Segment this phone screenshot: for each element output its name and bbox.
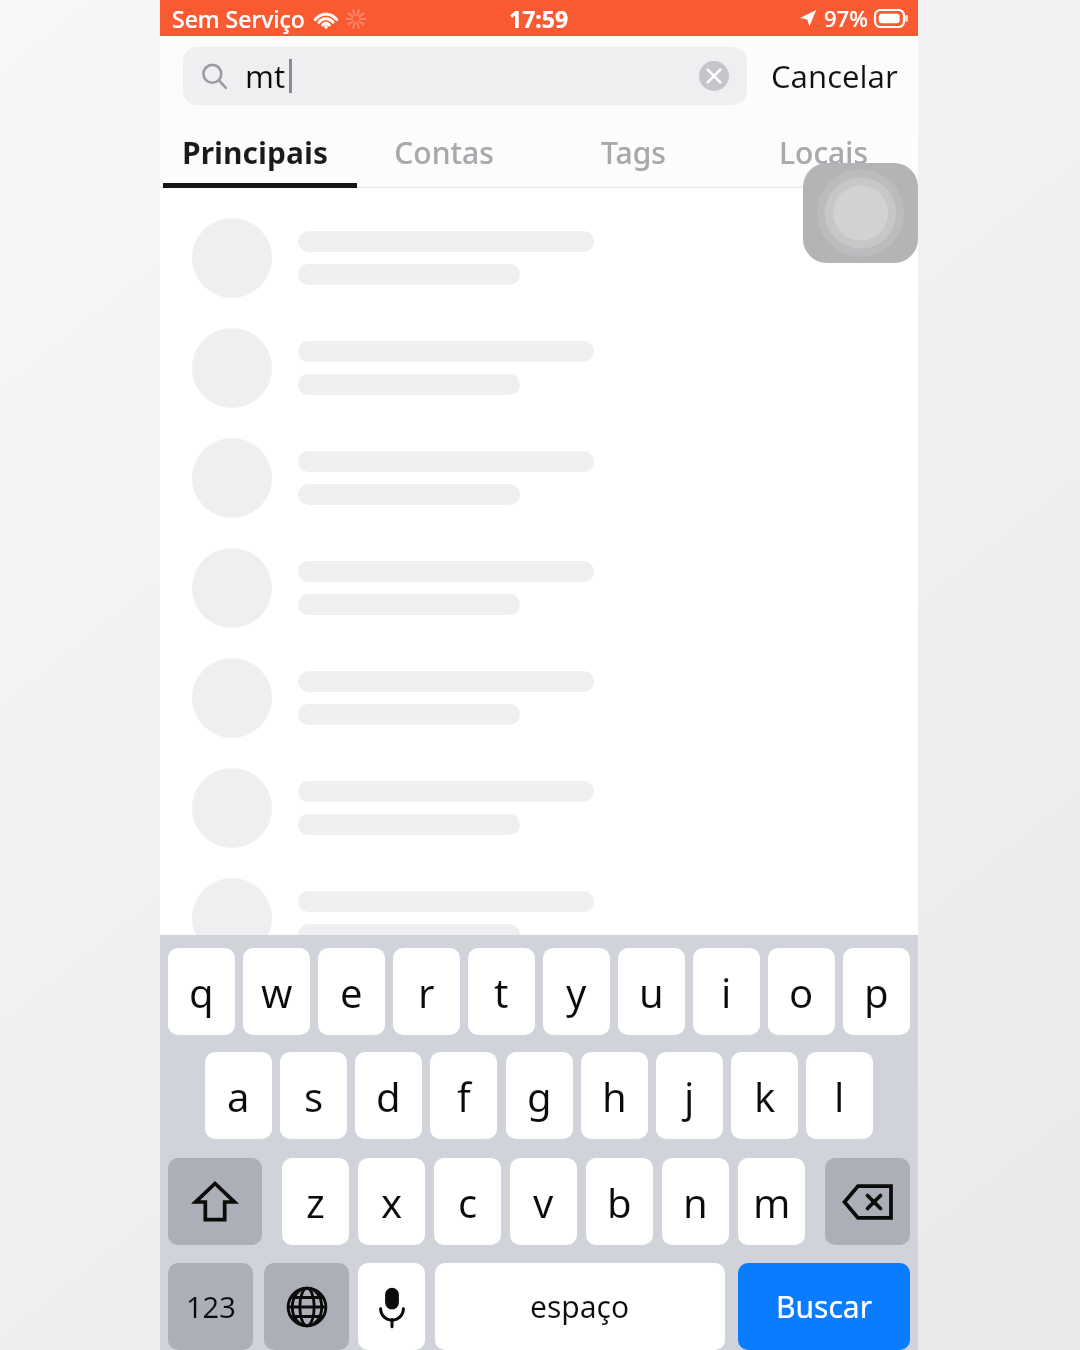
- button[interactable]: t: [468, 948, 535, 1035]
- button[interactable]: c: [434, 1158, 501, 1245]
- staticText: o: [789, 965, 814, 1019]
- staticText: i: [721, 965, 732, 1019]
- button[interactable]: l: [806, 1052, 873, 1139]
- button[interactable]: u: [618, 948, 685, 1035]
- staticText: Locais: [779, 132, 868, 173]
- button[interactable]: [160, 203, 918, 313]
- button[interactable]: [160, 423, 918, 533]
- staticText: f: [457, 1069, 471, 1123]
- button[interactable]: [160, 973, 918, 1083]
- button[interactable]: [160, 533, 918, 643]
- button[interactable]: z: [282, 1158, 349, 1245]
- staticText: k: [754, 1069, 776, 1123]
- button[interactable]: y: [543, 948, 610, 1035]
- staticText: t: [494, 965, 509, 1019]
- button[interactable]: Limpar busca: [699, 61, 729, 91]
- button[interactable]: Buscar: [738, 1263, 910, 1350]
- staticText: 17:59: [509, 3, 569, 34]
- button[interactable]: a: [205, 1052, 272, 1139]
- button[interactable]: [160, 863, 918, 973]
- button[interactable]: j: [656, 1052, 723, 1139]
- staticText: h: [602, 1069, 627, 1123]
- button[interactable]: Shift: [168, 1158, 262, 1245]
- button[interactable]: x: [358, 1158, 425, 1245]
- staticText: Principais: [182, 132, 328, 173]
- button[interactable]: h: [581, 1052, 648, 1139]
- staticText: 97%: [824, 3, 868, 33]
- staticText: y: [566, 965, 587, 1019]
- button[interactable]: q: [168, 948, 235, 1035]
- staticText: l: [834, 1069, 845, 1123]
- button[interactable]: [160, 313, 918, 423]
- button[interactable]: Números: [168, 1263, 253, 1350]
- staticText: d: [376, 1069, 401, 1123]
- button[interactable]: Cancelar: [765, 47, 904, 105]
- staticText: x: [381, 1175, 403, 1229]
- staticText: p: [864, 965, 889, 1019]
- staticText: m: [753, 1175, 791, 1229]
- button[interactable]: Principais: [160, 116, 349, 188]
- button[interactable]: g: [506, 1052, 573, 1139]
- button[interactable]: [160, 753, 918, 863]
- staticText: c: [458, 1175, 478, 1229]
- staticText: mt: [245, 55, 286, 97]
- staticText: Tags: [601, 132, 666, 173]
- button[interactable]: s: [280, 1052, 347, 1139]
- staticText: z: [306, 1175, 325, 1229]
- staticText: s: [304, 1069, 324, 1123]
- button[interactable]: Contas: [349, 116, 538, 188]
- staticText: espaço: [530, 1286, 630, 1327]
- button[interactable]: w: [243, 948, 310, 1035]
- staticText: Buscar: [776, 1286, 873, 1327]
- staticText: Cancelar: [771, 55, 898, 97]
- button[interactable]: Mudar idioma: [264, 1263, 349, 1350]
- button[interactable]: [160, 643, 918, 753]
- button[interactable]: k: [731, 1052, 798, 1139]
- button[interactable]: o: [768, 948, 835, 1035]
- staticText: g: [527, 1069, 552, 1123]
- staticText: q: [189, 965, 214, 1019]
- button[interactable]: f: [430, 1052, 497, 1139]
- staticText: 123: [186, 1287, 236, 1326]
- button[interactable]: Ditado: [358, 1263, 425, 1350]
- staticText: w: [261, 965, 293, 1019]
- button[interactable]: Locais: [728, 116, 918, 188]
- staticText: u: [639, 965, 664, 1019]
- staticText: r: [418, 965, 435, 1019]
- staticText: a: [227, 1069, 250, 1123]
- button[interactable]: n: [662, 1158, 729, 1245]
- button[interactable]: d: [355, 1052, 422, 1139]
- staticText: v: [533, 1175, 554, 1229]
- staticText: b: [607, 1175, 632, 1229]
- button[interactable]: Espaço: [435, 1263, 725, 1350]
- staticText: n: [683, 1175, 708, 1229]
- button[interactable]: Apagar: [825, 1158, 910, 1245]
- staticText: j: [684, 1069, 695, 1123]
- button[interactable]: p: [843, 948, 910, 1035]
- button[interactable]: r: [393, 948, 460, 1035]
- staticText: Sem Serviço: [172, 3, 305, 34]
- button[interactable]: i: [693, 948, 760, 1035]
- button[interactable]: mt: [183, 47, 747, 105]
- button[interactable]: Tags: [538, 116, 728, 188]
- staticText: e: [340, 965, 363, 1019]
- button[interactable]: b: [586, 1158, 653, 1245]
- staticText: Contas: [394, 132, 494, 173]
- button[interactable]: v: [510, 1158, 577, 1245]
- button[interactable]: m: [738, 1158, 805, 1245]
- button[interactable]: e: [318, 948, 385, 1035]
